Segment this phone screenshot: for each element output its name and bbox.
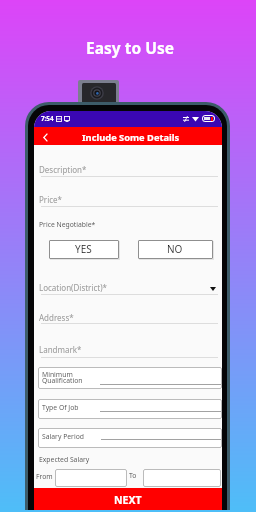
- staticText: Location(District)*: [39, 282, 108, 293]
- staticText: Price Negotiable*: [39, 220, 96, 229]
- button[interactable]: NO: [138, 240, 213, 259]
- button[interactable]: Salary to: [143, 469, 221, 487]
- staticText: NO: [167, 242, 183, 256]
- staticText: Minimum: [42, 370, 73, 379]
- staticText: 7:54: [41, 114, 54, 123]
- button[interactable]: Description*: [39, 159, 217, 178]
- staticText: Address*: [39, 312, 74, 323]
- staticText: Landmark*: [39, 344, 82, 355]
- button[interactable]: NEXT: [34, 488, 222, 510]
- button[interactable]: Landmark*: [39, 339, 217, 359]
- staticText: Price*: [39, 194, 62, 205]
- staticText: Description*: [39, 164, 87, 175]
- staticText: Qualification: [42, 376, 83, 385]
- staticText: Type Of Job: [42, 403, 79, 412]
- button[interactable]: Minimum: [38, 367, 222, 389]
- staticText: From: [36, 472, 53, 481]
- button[interactable]: Back: [37, 127, 54, 145]
- button[interactable]: Salary from: [55, 469, 127, 487]
- staticText: Expected Salary: [39, 455, 90, 464]
- button[interactable]: Address*: [39, 307, 217, 325]
- staticText: NEXT: [114, 493, 142, 507]
- button[interactable]: Location(District)*: [39, 277, 217, 296]
- staticText: Easy to Use: [86, 37, 174, 58]
- staticText: To: [129, 471, 137, 480]
- button[interactable]: Type Of Job: [38, 399, 222, 419]
- staticText: Include Some Details: [82, 131, 180, 144]
- staticText: YES: [75, 242, 92, 256]
- staticText: Salary Period: [42, 432, 84, 441]
- button[interactable]: Salary Period: [38, 428, 222, 448]
- button[interactable]: Price*: [39, 189, 217, 208]
- button[interactable]: YES: [49, 240, 119, 259]
